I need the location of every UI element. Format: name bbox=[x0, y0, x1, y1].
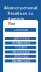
staticText: Alcance personal bbox=[4, 5, 37, 10]
button[interactable]: Cardiología bbox=[5, 37, 36, 40]
staticText: Traumatología bbox=[11, 59, 29, 63]
staticText: Resalta en tu dominio bbox=[7, 10, 33, 21]
staticText: Neurología bbox=[12, 50, 28, 54]
button[interactable]: Dermatología bbox=[5, 41, 36, 44]
button[interactable]: Pediatría bbox=[5, 46, 36, 49]
staticText: Pediatría bbox=[14, 46, 26, 49]
button[interactable]: Continuar bbox=[5, 28, 36, 32]
staticText: Continuar bbox=[13, 28, 27, 32]
staticText: Dermatología bbox=[11, 41, 29, 45]
button[interactable]: Neurología bbox=[5, 50, 36, 53]
staticText: Plan bbox=[8, 22, 15, 26]
staticText: médico bbox=[13, 21, 27, 27]
button[interactable]: Traumatología bbox=[5, 59, 36, 62]
staticText: Cardiología bbox=[12, 37, 28, 40]
button[interactable]: Oncología bbox=[5, 55, 36, 58]
staticText: Oncología bbox=[13, 55, 27, 58]
